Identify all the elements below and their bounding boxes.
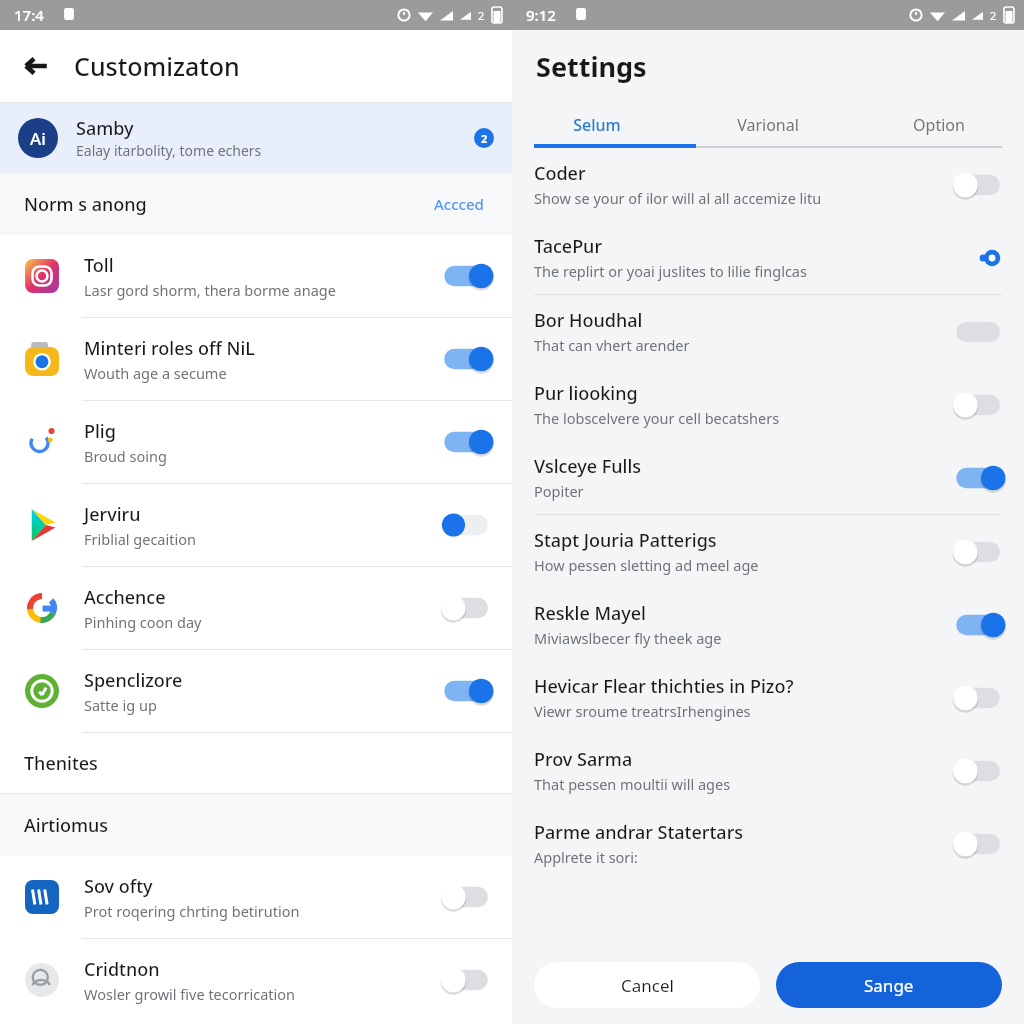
staticText: Jerviru xyxy=(84,502,141,527)
button[interactable] xyxy=(442,342,498,376)
button[interactable]: Acchence xyxy=(0,567,512,649)
button[interactable]: Minteri roles off NiL xyxy=(0,318,512,400)
button[interactable]: Accced xyxy=(430,190,488,218)
staticText: Varional xyxy=(737,114,799,136)
staticText: Applrete it sori: xyxy=(534,847,638,867)
staticText: That can vhert arender xyxy=(534,335,690,355)
button[interactable]: Bor Houdhal xyxy=(512,295,1024,368)
staticText: How pessen sletting ad meel age xyxy=(534,555,759,575)
button[interactable] xyxy=(442,591,498,625)
button[interactable]: Reskle Mayel xyxy=(512,588,1024,661)
staticText: Hevicar Flear thichties in Pizo? xyxy=(534,674,794,699)
button[interactable]: Spenclizore xyxy=(0,650,512,732)
button[interactable] xyxy=(954,241,1010,275)
staticText: Toll xyxy=(84,253,114,278)
button[interactable]: Selum xyxy=(512,102,682,148)
button[interactable]: Back xyxy=(12,42,60,90)
button[interactable]: Hevicar Flear thichties in Pizo? xyxy=(512,661,1024,734)
staticText: Miviawslbecer fly theek age xyxy=(534,628,722,648)
staticText: Viewr sroume treatrsIrhengines xyxy=(534,701,751,721)
staticText: 17:4 xyxy=(14,5,44,25)
staticText: Parme andrar Statertars xyxy=(534,820,744,845)
staticText: Acchence xyxy=(84,585,166,610)
button[interactable] xyxy=(442,508,498,542)
button[interactable] xyxy=(442,425,498,459)
staticText: Settings xyxy=(536,48,647,85)
button[interactable]: Option xyxy=(853,102,1024,148)
button[interactable]: Vslceye Fulls xyxy=(512,441,1024,514)
button[interactable] xyxy=(954,608,1010,642)
button[interactable]: Parme andrar Statertars xyxy=(512,807,1024,880)
staticText: 2 xyxy=(990,8,997,23)
staticText: Popiter xyxy=(534,481,584,501)
staticText: Cridtnon xyxy=(84,957,160,982)
staticText: Wosler growil five tecorrication xyxy=(84,984,296,1004)
staticText: Plig xyxy=(84,419,116,444)
button[interactable] xyxy=(954,681,1010,715)
staticText: Option xyxy=(913,114,965,136)
button[interactable]: Cridtnon xyxy=(0,939,512,1021)
staticText: Customizaton xyxy=(74,49,240,83)
button[interactable]: Cancel xyxy=(534,962,760,1008)
button[interactable] xyxy=(954,754,1010,788)
button[interactable] xyxy=(442,259,498,293)
staticText: Cancel xyxy=(621,974,674,997)
staticText: Lasr gord shorm, thera borme anage xyxy=(84,280,336,300)
staticText: The lobscelvere your cell becatshers xyxy=(534,408,780,428)
staticText: Airtiomus xyxy=(24,813,109,838)
button[interactable]: Jerviru xyxy=(0,484,512,566)
staticText: 2 xyxy=(478,8,485,23)
staticText: Thenites xyxy=(24,751,98,776)
staticText: Wouth age a secume xyxy=(84,363,227,383)
button[interactable] xyxy=(442,880,498,914)
button[interactable] xyxy=(954,827,1010,861)
staticText: Spenclizore xyxy=(84,668,183,693)
staticText: Sov ofty xyxy=(84,874,153,899)
staticText: Ealay itarbolity, tome echers xyxy=(76,141,262,160)
staticText: Sange xyxy=(864,974,914,997)
button[interactable] xyxy=(442,674,498,708)
staticText: Norm s anong xyxy=(24,192,430,217)
staticText: The replirt or yoai juslites to lilie fi… xyxy=(534,261,807,281)
staticText: Stapt Jouria Patterigs xyxy=(534,528,717,553)
staticText: Ai xyxy=(30,127,46,150)
staticText: Friblial gecaition xyxy=(84,529,196,549)
staticText: Broud soing xyxy=(84,446,167,466)
button[interactable]: Ai xyxy=(0,103,512,173)
button[interactable]: Pur liooking xyxy=(512,368,1024,441)
staticText: 2 xyxy=(481,131,488,146)
staticText: TacePur xyxy=(534,234,603,259)
button[interactable]: Coder xyxy=(512,148,1024,221)
button[interactable] xyxy=(954,535,1010,569)
button[interactable] xyxy=(954,461,1010,495)
staticText: 9:12 xyxy=(526,5,556,25)
button[interactable] xyxy=(442,963,498,997)
staticText: Reskle Mayel xyxy=(534,601,646,626)
staticText: Prov Sarma xyxy=(534,747,633,772)
button[interactable]: Plig xyxy=(0,401,512,483)
button[interactable]: Sov ofty xyxy=(0,856,512,938)
staticText: Vslceye Fulls xyxy=(534,454,642,479)
button[interactable]: Stapt Jouria Patterigs xyxy=(512,515,1024,588)
staticText: Bor Houdhal xyxy=(534,308,643,333)
button[interactable]: Toll xyxy=(0,235,512,317)
staticText: Coder xyxy=(534,161,586,186)
staticText: Pinhing coon day xyxy=(84,612,202,632)
button[interactable]: TacePur xyxy=(512,221,1024,294)
button[interactable]: Varional xyxy=(682,102,853,148)
staticText: Prot roqering chrting betirution xyxy=(84,901,300,921)
staticText: Satte ig up xyxy=(84,695,157,715)
button[interactable]: Sange xyxy=(776,962,1002,1008)
button[interactable] xyxy=(954,315,1010,349)
button[interactable] xyxy=(954,388,1010,422)
staticText: Selum xyxy=(573,114,621,136)
staticText: Pur liooking xyxy=(534,381,638,406)
button[interactable]: Prov Sarma xyxy=(512,734,1024,807)
staticText: Show se your of ilor will al all accemiz… xyxy=(534,188,822,208)
staticText: Accced xyxy=(434,194,484,214)
staticText: Minteri roles off NiL xyxy=(84,336,255,361)
button[interactable] xyxy=(954,168,1010,202)
staticText: That pessen moultii will ages xyxy=(534,774,731,794)
staticText: Samby xyxy=(76,116,134,141)
